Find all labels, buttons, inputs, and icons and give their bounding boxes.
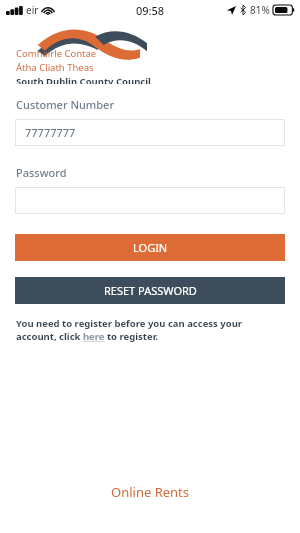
button[interactable]: RESET PASSWORD bbox=[15, 277, 285, 304]
staticText: Customer Number bbox=[16, 97, 115, 112]
staticText: LOGIN bbox=[133, 240, 168, 255]
staticText: 77777777 bbox=[25, 125, 76, 140]
staticText: Password bbox=[16, 165, 67, 180]
button[interactable]: You need to register before you can acce… bbox=[16, 317, 284, 343]
button[interactable]: 77777777 bbox=[15, 119, 285, 146]
staticText: 09:58 bbox=[136, 3, 165, 18]
staticText: South Dublin County Council bbox=[16, 75, 151, 84]
button[interactable] bbox=[15, 187, 285, 214]
staticText: Online Rents bbox=[111, 483, 190, 501]
staticText: 81% bbox=[250, 3, 270, 17]
staticText: Comhairle Contae bbox=[16, 47, 97, 60]
button[interactable]: Online Rents bbox=[0, 477, 300, 507]
staticText: You need to register before you can acce… bbox=[16, 317, 284, 343]
staticText: RESET PASSWORD bbox=[104, 283, 197, 298]
staticText: Átha Cliath Theas bbox=[16, 61, 94, 74]
other: South Dublin County Council bbox=[14, 24, 154, 82]
button[interactable]: LOGIN bbox=[15, 234, 285, 261]
staticText: eir bbox=[26, 3, 39, 17]
